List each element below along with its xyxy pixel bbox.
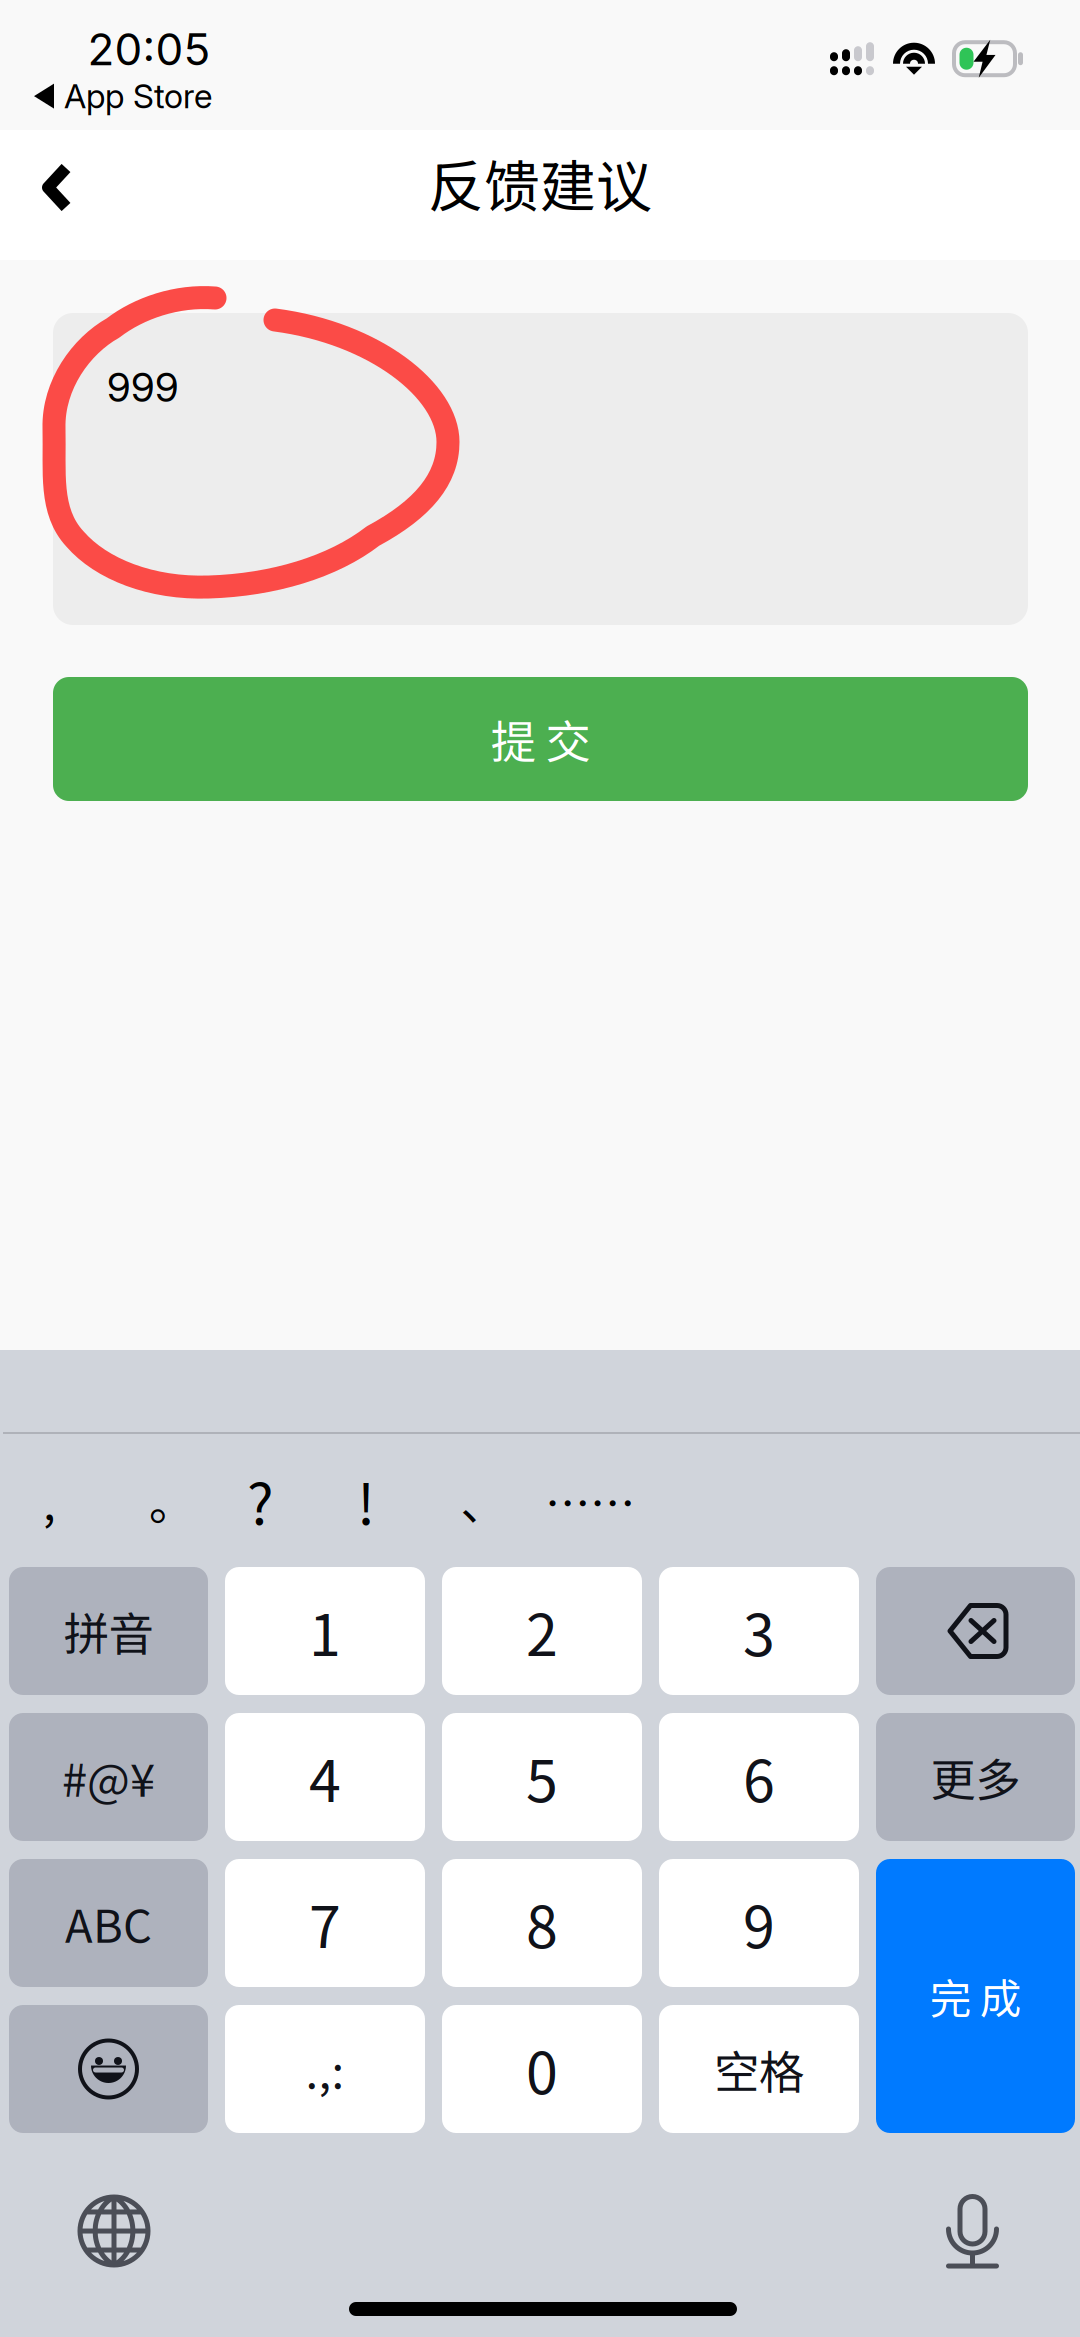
- staticText: 7: [309, 1881, 341, 1964]
- button[interactable]: .,:: [225, 2005, 425, 2133]
- staticText: 拼音: [63, 1598, 153, 1664]
- staticText: ……: [545, 1468, 635, 1533]
- button[interactable]: [9, 2005, 208, 2133]
- staticText: 2: [526, 1589, 558, 1672]
- staticText: ?: [247, 1460, 274, 1541]
- button[interactable]: ABC: [9, 1859, 208, 1987]
- button[interactable]: 提 交: [53, 677, 1028, 801]
- staticText: ABC: [65, 1890, 152, 1956]
- button[interactable]: [876, 1567, 1075, 1695]
- button[interactable]: #@¥: [9, 1713, 208, 1841]
- button[interactable]: 3: [659, 1567, 859, 1695]
- button[interactable]: 4: [225, 1713, 425, 1841]
- staticText: 9: [743, 1881, 775, 1964]
- staticText: !: [357, 1460, 375, 1541]
- button[interactable]: Switch keyboard: [3, 2183, 188, 2279]
- button[interactable]: 更多: [876, 1713, 1075, 1841]
- staticText: 3: [743, 1589, 775, 1672]
- staticText: 4: [309, 1735, 341, 1818]
- staticText: 6: [743, 1735, 775, 1818]
- staticText: 反馈建议: [428, 142, 652, 223]
- button[interactable]: 0: [442, 2005, 642, 2133]
- button[interactable]: 、: [412, 1434, 526, 1567]
- staticText: #@¥: [62, 1744, 155, 1810]
- button[interactable]: 完 成: [876, 1859, 1075, 2133]
- staticText: 0: [526, 2027, 558, 2110]
- button[interactable]: ?: [217, 1434, 312, 1567]
- button[interactable]: Back: [0, 130, 114, 260]
- staticText: 20:05: [87, 23, 210, 76]
- button[interactable]: 2: [442, 1567, 642, 1695]
- button[interactable]: 6: [659, 1713, 859, 1841]
- button[interactable]: ,: [3, 1434, 96, 1567]
- staticText: 更多: [930, 1744, 1020, 1810]
- staticText: ,: [43, 1468, 56, 1533]
- staticText: 8: [526, 1881, 558, 1964]
- staticText: 1: [309, 1589, 341, 1672]
- button[interactable]: 8: [442, 1859, 642, 1987]
- button[interactable]: 1: [225, 1567, 425, 1695]
- staticText: 提 交: [490, 706, 590, 772]
- button[interactable]: !: [312, 1434, 412, 1567]
- button[interactable]: 5: [442, 1713, 642, 1841]
- staticText: App Store: [64, 76, 212, 116]
- button[interactable]: Dictation: [908, 2183, 1080, 2279]
- button[interactable]: 空格: [659, 2005, 859, 2133]
- staticText: 空格: [714, 2036, 804, 2102]
- button[interactable]: ……: [526, 1434, 646, 1567]
- button[interactable]: 9: [659, 1859, 859, 1987]
- staticText: .,:: [305, 2036, 344, 2102]
- button[interactable]: 拼音: [9, 1567, 208, 1695]
- staticText: 完 成: [930, 1966, 1021, 2026]
- staticText: 。: [149, 1468, 194, 1533]
- button[interactable]: 7: [225, 1859, 425, 1987]
- staticText: 、: [460, 1468, 505, 1533]
- staticText: 5: [526, 1735, 558, 1818]
- button[interactable]: 。: [96, 1434, 217, 1567]
- staticText: 999: [107, 363, 179, 411]
